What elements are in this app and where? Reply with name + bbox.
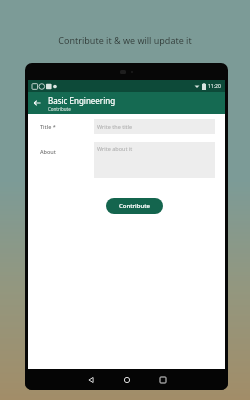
staticText: Title * (40, 123, 94, 130)
staticText: Write about it (97, 145, 133, 152)
staticText: Basic Engineering (48, 95, 116, 106)
button[interactable]: Contribute (106, 198, 163, 214)
staticText: Contribute (119, 202, 150, 210)
staticText: Contribute (48, 106, 71, 112)
button[interactable]: Write about it (94, 142, 215, 178)
staticText: Contribute it & we will update it (0, 34, 250, 46)
button[interactable]: Home (109, 369, 145, 390)
staticText: 11:20 (208, 83, 221, 90)
button[interactable]: Back (28, 94, 46, 112)
button[interactable]: Back (73, 369, 109, 390)
staticText: About (40, 148, 94, 155)
button[interactable]: Recent apps (145, 369, 181, 390)
button[interactable]: Write the title (94, 119, 215, 134)
staticText: Write the title (97, 123, 133, 130)
